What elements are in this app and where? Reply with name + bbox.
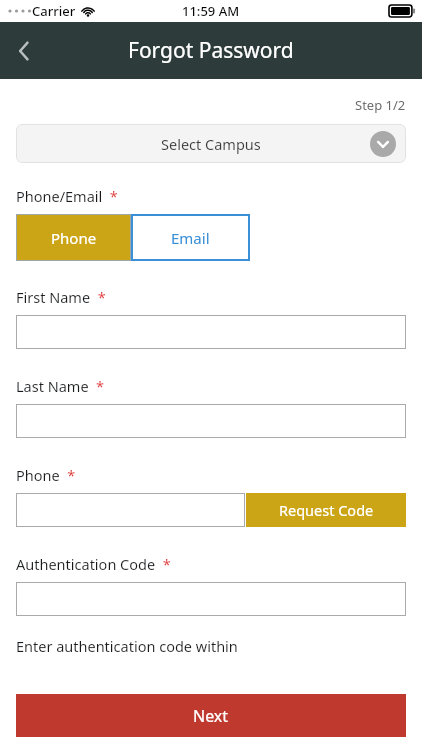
staticText: Last Name *: [16, 376, 105, 396]
staticText: Carrier: [32, 2, 76, 20]
staticText: Email: [171, 228, 210, 248]
staticText: Phone *: [16, 465, 76, 485]
button[interactable]: [16, 404, 406, 438]
staticText: Request Code: [279, 500, 374, 520]
staticText: Forgot Password: [128, 36, 294, 65]
button[interactable]: Back: [0, 27, 48, 75]
button[interactable]: Next: [16, 694, 406, 737]
button[interactable]: [16, 582, 406, 616]
button[interactable]: Select Campus: [16, 124, 406, 163]
button[interactable]: [16, 315, 406, 349]
staticText: First Name *: [16, 287, 106, 307]
staticText: Enter authentication code within: [16, 636, 238, 656]
staticText: Step 1/2: [355, 96, 406, 114]
staticText: Select Campus: [161, 134, 261, 154]
button[interactable]: Request Code: [246, 493, 406, 527]
button[interactable]: Email: [131, 214, 250, 261]
staticText: Next: [193, 705, 229, 727]
staticText: Phone/Email *: [16, 186, 118, 206]
staticText: 11:59 AM: [182, 2, 240, 20]
staticText: Phone: [51, 228, 97, 248]
button[interactable]: [16, 493, 245, 527]
button[interactable]: Phone: [16, 214, 131, 261]
staticText: Authentication Code *: [16, 554, 171, 574]
